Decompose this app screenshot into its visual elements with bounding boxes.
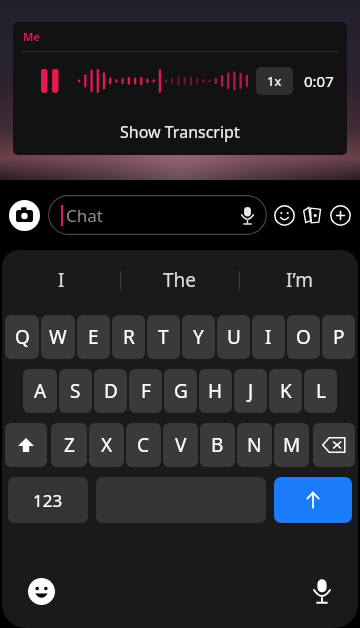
staticText: L <box>316 378 326 404</box>
button[interactable]: F <box>129 369 162 413</box>
button[interactable]: G <box>164 369 197 413</box>
button[interactable]: Chat <box>48 195 267 235</box>
staticText: 0:07 <box>304 71 334 91</box>
button[interactable]: L <box>304 369 337 413</box>
staticText: O <box>296 324 311 350</box>
staticText: U <box>227 324 241 350</box>
staticText: S <box>70 378 81 404</box>
staticText: R <box>123 324 135 350</box>
button[interactable]: C <box>126 423 161 467</box>
staticText: I <box>58 267 65 293</box>
staticText: Y <box>193 324 204 350</box>
button[interactable]: K <box>269 369 302 413</box>
button[interactable]: Send <box>274 477 352 523</box>
button[interactable]: The <box>121 250 239 310</box>
button[interactable]: T <box>147 315 180 359</box>
staticText: V <box>175 432 187 458</box>
button[interactable]: D <box>94 369 127 413</box>
button[interactable]: Pause <box>41 66 65 96</box>
staticText: B <box>211 432 224 458</box>
button[interactable]: R <box>112 315 145 359</box>
button[interactable]: Backspace <box>313 423 355 467</box>
button[interactable]: I’m <box>240 250 358 310</box>
staticText: I <box>265 324 272 350</box>
button[interactable]: 123 <box>8 477 88 523</box>
button[interactable]: Stickers <box>302 205 323 226</box>
staticText: M <box>283 432 301 458</box>
button[interactable]: 1x <box>256 67 293 95</box>
staticText: Z <box>64 432 75 458</box>
button[interactable]: N <box>237 423 272 467</box>
staticText: Me <box>23 29 40 44</box>
staticText: The <box>163 267 197 293</box>
staticText: P <box>333 324 345 350</box>
staticText: K <box>280 378 292 404</box>
staticText: G <box>174 378 188 404</box>
button[interactable]: Voice input <box>312 578 332 604</box>
button[interactable]: Emoji keyboard <box>28 578 55 605</box>
staticText: W <box>49 324 67 350</box>
button[interactable]: E <box>77 315 110 359</box>
button[interactable]: I <box>252 315 285 359</box>
staticText: D <box>104 378 118 404</box>
button[interactable]: J <box>234 369 267 413</box>
staticText: A <box>34 378 47 404</box>
staticText: N <box>247 432 262 458</box>
staticText: C <box>137 432 150 458</box>
button[interactable]: X <box>89 423 124 467</box>
button[interactable]: Voice note <box>240 206 255 225</box>
button[interactable]: Y <box>182 315 215 359</box>
staticText: H <box>208 378 223 404</box>
button[interactable]: P <box>322 315 355 359</box>
button[interactable]: M <box>274 423 309 467</box>
button[interactable]: W <box>41 315 75 359</box>
staticText: X <box>101 432 113 458</box>
staticText: F <box>141 378 151 404</box>
staticText: J <box>248 378 254 404</box>
button[interactable]: U <box>217 315 250 359</box>
staticText: 123 <box>33 489 63 512</box>
button[interactable]: O <box>287 315 320 359</box>
button[interactable]: Shift <box>5 423 47 467</box>
staticText: Show Transcript <box>120 121 240 143</box>
staticText: 1x <box>267 72 282 90</box>
staticText: I’m <box>286 267 313 293</box>
button[interactable]: Camera <box>9 200 40 231</box>
button[interactable]: H <box>199 369 232 413</box>
staticText: T <box>158 324 169 350</box>
staticText: Q <box>15 324 30 350</box>
button[interactable]: I <box>2 250 120 310</box>
button[interactable]: Q <box>5 315 39 359</box>
staticText: Chat <box>66 204 240 227</box>
button[interactable]: B <box>200 423 235 467</box>
button[interactable]: Add <box>330 205 351 226</box>
button[interactable]: V <box>163 423 198 467</box>
button[interactable]: Show Transcript <box>13 109 347 155</box>
button[interactable]: Emoji <box>274 205 295 226</box>
staticText: E <box>88 324 99 350</box>
button[interactable]: Z <box>51 423 87 467</box>
button[interactable]: A <box>23 369 57 413</box>
button[interactable]: S <box>59 369 92 413</box>
